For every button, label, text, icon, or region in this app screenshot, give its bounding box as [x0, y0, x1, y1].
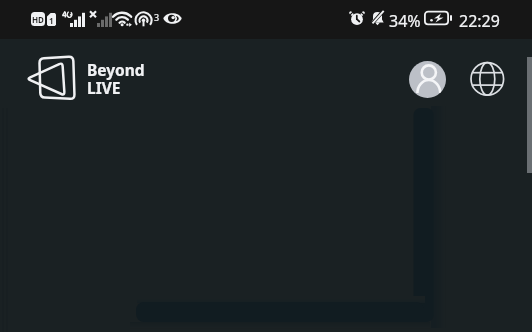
staticText: 1 — [49, 15, 54, 26]
staticText: 34% — [389, 10, 421, 32]
staticText: 22:29 — [459, 10, 500, 32]
staticText: 3 — [154, 11, 160, 23]
button[interactable]: Language — [469, 59, 507, 97]
staticText: LIVE — [87, 77, 121, 98]
button[interactable]: Beyond — [20, 51, 132, 105]
button[interactable]: Account — [409, 61, 446, 98]
staticText: Beyond — [87, 59, 145, 80]
staticText: HD — [32, 14, 44, 25]
